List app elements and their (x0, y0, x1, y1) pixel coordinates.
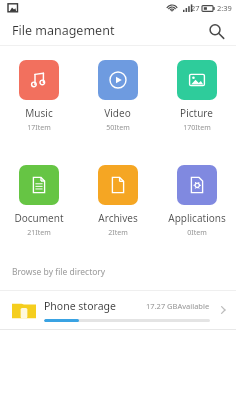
button[interactable]: Video (78, 58, 157, 135)
staticText: Document (14, 211, 64, 225)
staticText: 27 (191, 3, 200, 13)
staticText: Archives (98, 211, 138, 225)
staticText: 2:39 (217, 3, 232, 13)
button[interactable]: Document (0, 163, 78, 240)
staticText: 50Item (106, 123, 130, 133)
button[interactable]: Picture (157, 58, 236, 135)
staticText: 0Item (187, 228, 207, 238)
staticText: 2Item (108, 228, 128, 238)
staticText: 17Item (27, 123, 51, 133)
staticText: Picture (180, 106, 213, 120)
staticText: Music (25, 106, 53, 120)
staticText: File management (12, 22, 115, 39)
button[interactable]: Phone storage (0, 291, 236, 329)
button[interactable]: Search (204, 19, 228, 43)
staticText: Video (104, 106, 131, 120)
button[interactable]: Applications (157, 163, 236, 240)
staticText: Applications (168, 211, 226, 225)
staticText: Phone storage (44, 299, 116, 313)
staticText: Browse by file directory (12, 266, 106, 278)
staticText: 21Item (27, 228, 51, 238)
button[interactable]: Music (0, 58, 78, 135)
staticText: 170Item (183, 123, 211, 133)
staticText: 17.27 GBAvailable (146, 301, 210, 311)
button[interactable]: Archives (78, 163, 157, 240)
